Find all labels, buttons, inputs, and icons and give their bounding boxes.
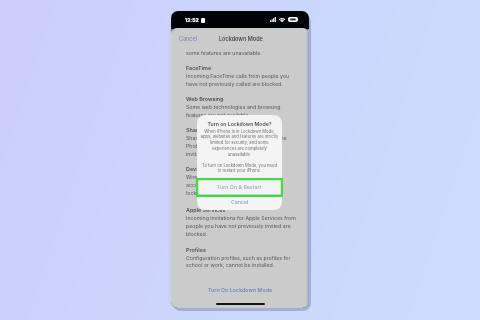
staticText: Device Connections bbox=[186, 166, 239, 173]
staticText: Wired connections with a computer or bbox=[186, 174, 281, 180]
staticText: Turn On & Restart bbox=[217, 184, 262, 190]
staticText: Lockdown Mode bbox=[219, 36, 263, 43]
staticText: Some web technologies and browsing bbox=[186, 104, 281, 110]
staticText: some features are unavailable. bbox=[186, 50, 262, 56]
button[interactable]: Cancel bbox=[179, 36, 198, 43]
staticText: FaceTime bbox=[186, 65, 212, 72]
staticText: Incoming FaceTime calls from people you bbox=[186, 73, 290, 79]
staticText: When iPhone is in Lockdown Mode, apps, w… bbox=[197, 129, 282, 157]
staticText: blocked. bbox=[186, 231, 208, 237]
staticText: Turn on Lockdown Mode? bbox=[197, 121, 282, 127]
staticText: school or work, cannot be installed. bbox=[186, 262, 275, 268]
staticText: locked. bbox=[186, 190, 204, 196]
button[interactable]: Cancel bbox=[197, 194, 282, 210]
staticText: Photos app, and new Shared Album bbox=[186, 143, 275, 149]
staticText: Cancel bbox=[179, 36, 198, 43]
button[interactable]: Turn On Lockdown Mode bbox=[208, 287, 273, 293]
staticText: Profiles bbox=[186, 247, 206, 254]
staticText: invitations are blocked. bbox=[186, 151, 244, 157]
staticText: people you have not previously invited a… bbox=[186, 223, 291, 229]
staticText: Web Browsing bbox=[186, 96, 224, 103]
other: Highlighted action bbox=[196, 178, 283, 197]
staticText: Apple Services bbox=[186, 207, 226, 214]
staticText: Incoming invitations for Apple Services … bbox=[186, 215, 296, 221]
staticText: Shared Albums will be removed from the bbox=[186, 135, 287, 141]
staticText: Turn On Lockdown Mode bbox=[208, 287, 273, 293]
staticText: 12:52 bbox=[185, 17, 199, 23]
button[interactable]: Turn On & Restart bbox=[197, 179, 282, 194]
staticText: Cancel bbox=[231, 199, 249, 205]
staticText: Shared Albums bbox=[186, 127, 226, 134]
staticText: accessory are blocked when iPhone is bbox=[186, 182, 282, 188]
staticText: To turn on Lockdown Mode, you need to re… bbox=[197, 163, 282, 173]
staticText: have not previously called are blocked. bbox=[186, 81, 283, 87]
staticText: features are not available. bbox=[186, 112, 250, 118]
staticText: Configuration profiles, such as profiles… bbox=[186, 255, 291, 261]
